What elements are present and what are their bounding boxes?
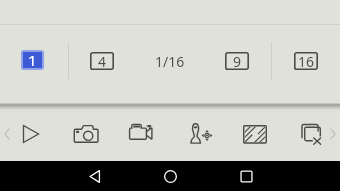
button[interactable]: Scroll left (0, 122, 14, 146)
staticText: 16 (298, 52, 315, 70)
button[interactable]: 1/16 (148, 52, 192, 70)
button[interactable]: Take photo (68, 116, 104, 152)
button[interactable]: 1 (21, 50, 44, 70)
staticText: 1 (28, 50, 37, 70)
button[interactable]: Recent apps (231, 161, 261, 191)
button[interactable]: Texture (237, 116, 273, 152)
button[interactable]: Home (155, 161, 185, 191)
staticText: 4 (98, 52, 107, 70)
button[interactable]: Move (184, 116, 220, 152)
staticText: 1/16 (155, 52, 185, 70)
button[interactable]: 4 (90, 52, 114, 70)
button[interactable]: 16 (294, 52, 318, 70)
button[interactable]: Play (13, 116, 49, 152)
button[interactable]: Scroll right (326, 122, 340, 146)
button[interactable]: Close all (294, 116, 330, 152)
button[interactable]: 9 (225, 52, 249, 70)
staticText: 9 (233, 52, 242, 70)
button[interactable]: Back (80, 161, 110, 191)
button[interactable]: Record video (123, 116, 159, 152)
